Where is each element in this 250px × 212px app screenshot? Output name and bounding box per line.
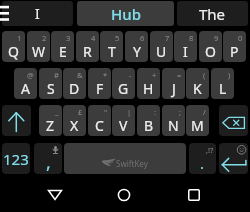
staticText: F xyxy=(96,79,104,98)
staticText: Z xyxy=(46,116,55,135)
staticText: SwiftKey xyxy=(116,158,148,169)
button[interactable]: ) xyxy=(211,68,234,99)
button[interactable]: 5 xyxy=(100,31,123,62)
button[interactable]: 123 xyxy=(2,143,30,174)
staticText: _ xyxy=(55,107,59,117)
staticText: Hub xyxy=(111,4,141,24)
staticText: - xyxy=(129,70,132,80)
button[interactable]: ( xyxy=(186,68,209,99)
staticText: ) xyxy=(228,70,231,80)
staticText: 8 xyxy=(189,33,194,43)
button[interactable]: ,!? xyxy=(189,143,216,174)
staticText: ,!? xyxy=(206,145,214,155)
staticText: G xyxy=(118,79,129,98)
button[interactable]: " xyxy=(88,105,111,136)
staticText: + xyxy=(152,70,157,80)
staticText: M xyxy=(191,116,204,135)
staticText: = xyxy=(177,70,182,80)
staticText: X xyxy=(70,116,79,135)
staticText: L xyxy=(219,79,227,98)
staticText: 4 xyxy=(91,33,96,43)
staticText: T xyxy=(108,42,116,61)
button[interactable]: @ xyxy=(14,68,37,99)
staticText: The xyxy=(199,4,226,24)
button[interactable]: I xyxy=(2,1,73,26)
staticText: 6 xyxy=(140,33,145,43)
staticText: ; xyxy=(179,107,182,117)
button[interactable]: * xyxy=(88,68,111,99)
staticText: 7 xyxy=(165,33,170,43)
staticText: B xyxy=(144,116,154,135)
staticText: H xyxy=(143,79,154,98)
staticText: K xyxy=(193,79,202,98)
staticText: E xyxy=(59,42,67,61)
button[interactable]: Enter xyxy=(219,143,248,174)
button[interactable]: 8 xyxy=(174,31,197,62)
button[interactable]: _ xyxy=(39,105,62,136)
staticText: N xyxy=(168,116,179,135)
staticText: A xyxy=(21,79,30,98)
button[interactable]: Backspace xyxy=(219,105,248,136)
button[interactable]: | xyxy=(112,105,135,136)
button[interactable]: 2 xyxy=(27,31,50,62)
staticText: 3 xyxy=(66,33,71,43)
staticText: C xyxy=(95,116,104,135)
button[interactable]: 0 xyxy=(223,31,246,62)
button[interactable]: ; xyxy=(162,105,185,136)
button[interactable]: Home xyxy=(106,181,142,209)
staticText: 2 xyxy=(42,33,47,43)
button[interactable]: # xyxy=(39,68,62,99)
staticText: , xyxy=(46,150,51,174)
staticText: 9 xyxy=(214,33,219,43)
staticText: ( xyxy=(203,70,206,80)
staticText: J xyxy=(172,79,176,98)
button[interactable]: - xyxy=(112,68,135,99)
staticText: 123 xyxy=(3,149,29,169)
button[interactable]: Open menu xyxy=(0,1,12,26)
staticText: 1 xyxy=(17,33,22,43)
staticText: D xyxy=(69,79,80,98)
button[interactable]: £ xyxy=(63,105,86,136)
staticText: W xyxy=(32,42,46,61)
staticText: | xyxy=(127,107,132,117)
staticText: £ xyxy=(78,107,83,117)
button[interactable]: SwiftKey xyxy=(64,143,186,174)
staticText: @ xyxy=(27,70,34,80)
button[interactable]: 1 xyxy=(2,31,25,62)
button[interactable]: Back xyxy=(37,181,73,209)
button[interactable]: Shift xyxy=(2,105,31,136)
staticText: * xyxy=(103,70,108,80)
staticText: 0 xyxy=(238,33,243,43)
button[interactable]: 4 xyxy=(76,31,99,62)
button[interactable]: 3 xyxy=(51,31,74,62)
staticText: # xyxy=(54,70,59,80)
button[interactable]: The xyxy=(177,1,248,26)
button[interactable]: Hub xyxy=(77,1,174,26)
staticText: I xyxy=(183,42,188,61)
staticText: & xyxy=(77,70,83,80)
staticText: 5 xyxy=(115,33,120,43)
staticText: Y xyxy=(133,42,141,61)
button[interactable]: 6 xyxy=(125,31,148,62)
staticText: R xyxy=(83,42,92,61)
staticText: P xyxy=(230,42,239,61)
button[interactable]: , xyxy=(34,143,62,174)
staticText: . xyxy=(200,153,205,173)
button[interactable]: & xyxy=(63,68,86,99)
staticText: / xyxy=(203,107,206,117)
staticText: Q xyxy=(8,42,19,61)
staticText: V xyxy=(119,116,128,135)
staticText: S xyxy=(47,79,55,98)
button[interactable]: : xyxy=(137,105,160,136)
staticText: " xyxy=(104,107,108,117)
button[interactable]: 7 xyxy=(150,31,173,62)
button[interactable]: = xyxy=(162,68,185,99)
button[interactable]: / xyxy=(186,105,209,136)
staticText: U xyxy=(156,42,167,61)
staticText: : xyxy=(154,107,157,117)
button[interactable]: + xyxy=(137,68,160,99)
button[interactable]: Recent apps xyxy=(176,181,212,209)
staticText: O xyxy=(205,42,216,61)
staticText: I xyxy=(35,4,40,23)
button[interactable]: 9 xyxy=(199,31,222,62)
